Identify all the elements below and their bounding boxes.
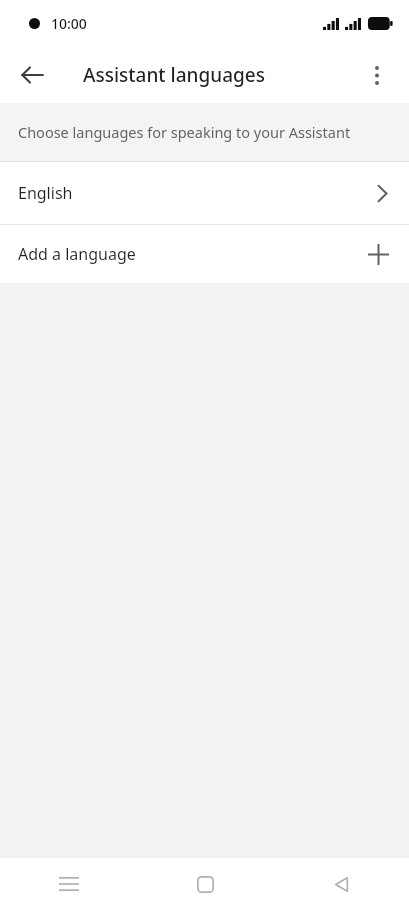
staticText: Choose languages for speaking to your As… — [18, 122, 351, 142]
button[interactable]: Home — [137, 858, 273, 910]
staticText: Assistant languages — [83, 62, 265, 88]
button[interactable]: Navigate up — [9, 51, 56, 98]
button[interactable]: Back — [273, 858, 409, 910]
button[interactable]: Add a language — [0, 225, 409, 283]
button[interactable]: English — [0, 162, 409, 224]
staticText: English — [18, 182, 73, 204]
button[interactable]: Menu — [0, 858, 137, 910]
button[interactable]: More options — [354, 52, 400, 98]
staticText: Add a language — [18, 243, 136, 265]
staticText: 10:00 — [51, 14, 87, 33]
